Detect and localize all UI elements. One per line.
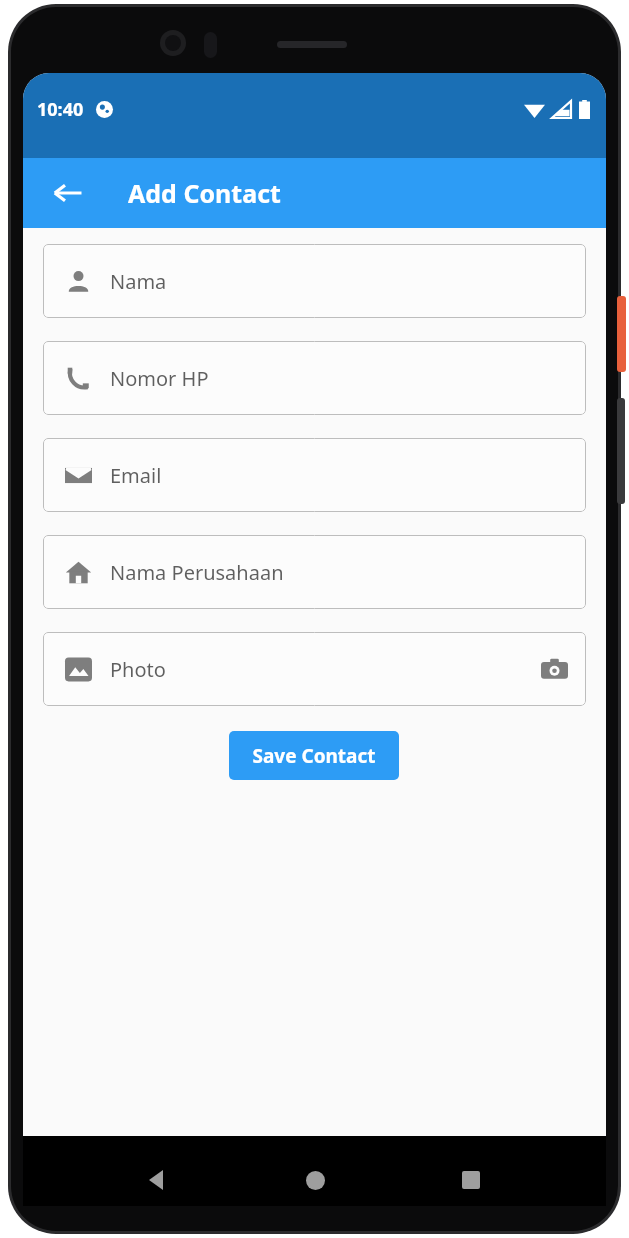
staticText: Email <box>110 462 162 489</box>
staticText: Photo <box>110 656 166 683</box>
button[interactable]: Photo <box>43 632 586 706</box>
button[interactable]: Home <box>293 1158 337 1202</box>
staticText: Save Contact <box>252 743 376 769</box>
staticText: Add Contact <box>128 176 281 210</box>
staticText: Nama <box>110 268 167 295</box>
button[interactable]: Nama Perusahaan <box>43 535 586 609</box>
button[interactable]: Recent apps <box>449 1158 493 1202</box>
button[interactable]: Back <box>136 1158 180 1202</box>
button[interactable]: Nomor HP <box>43 341 586 415</box>
button[interactable]: Back <box>43 168 93 218</box>
staticText: 10:40 <box>37 97 84 122</box>
staticText: Nama Perusahaan <box>110 559 284 586</box>
button[interactable]: Nama <box>43 244 586 318</box>
button[interactable]: Save Contact <box>229 731 399 780</box>
button[interactable]: Email <box>43 438 586 512</box>
staticText: Nomor HP <box>110 365 209 392</box>
button[interactable]: Take photo <box>532 647 576 691</box>
